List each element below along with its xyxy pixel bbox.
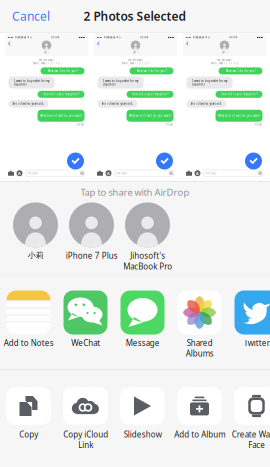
staticText: Message — [125, 337, 159, 348]
staticText: Shared Albums — [185, 337, 213, 359]
staticText: She is twelve years old. — [190, 102, 222, 105]
staticText: Lan › — [43, 50, 49, 54]
staticText: What can I do for you? — [225, 69, 255, 73]
staticText: Create Watch Face — [231, 429, 270, 450]
button[interactable]: WeChat — [57, 290, 114, 366]
staticText: A — [196, 171, 199, 176]
staticText: 10:04 — [228, 35, 237, 39]
staticText: Cancel — [12, 8, 50, 24]
button[interactable]: Selected photo — [5, 33, 88, 179]
staticText: I want to buy a skirt for my daughter — [14, 79, 49, 86]
staticText: Mon, Mar 11 11:13 — [33, 61, 60, 65]
staticText: A — [18, 171, 21, 176]
staticText: I want to buy a skirt for my daughter — [192, 79, 227, 86]
staticText: ▬▬ 中国移动 4G — [7, 35, 31, 39]
staticText: ▬▬ 中国移动 4G — [185, 35, 209, 39]
staticText: What kind of skirt do you want? — [218, 114, 260, 117]
staticText: Jihosoft's MacBook Pro — [123, 250, 172, 272]
button[interactable]: Jihosoft's MacBook Pro — [119, 202, 175, 274]
button[interactable]: Twitter — [228, 290, 270, 366]
staticText: 10:04 — [50, 35, 59, 39]
staticText: Text Message — [38, 58, 54, 61]
staticText: How old is your daughter? — [42, 93, 79, 96]
button[interactable]: iPhone 7 Plus — [63, 202, 119, 274]
staticText: 2 Photos Selected — [83, 8, 186, 24]
staticText: iMessage — [205, 171, 217, 175]
staticText: Tap to share with AirDrop — [80, 186, 189, 198]
staticText: She is twelve years old. — [12, 102, 44, 105]
staticText: Read — [255, 123, 262, 126]
staticText: Text Message — [127, 58, 143, 61]
button[interactable]: Shared Albums — [171, 290, 228, 366]
staticText: iMessage — [27, 171, 39, 175]
staticText: Read — [166, 123, 173, 126]
staticText: Copy iCloud Link — [63, 429, 108, 450]
button[interactable]: Copy iCloud Link — [57, 387, 114, 467]
button[interactable]: Add to Notes — [0, 290, 57, 366]
staticText: ▪▪▬ — [78, 36, 85, 39]
staticText: ▪▪▬ — [167, 36, 174, 39]
staticText: Add to Notes — [3, 337, 53, 348]
staticText: Copy — [19, 429, 38, 440]
button[interactable]: Cancel — [0, 0, 62, 32]
button[interactable]: Selected photo — [94, 33, 177, 179]
staticText: Lan › — [132, 50, 138, 54]
button[interactable]: Create Watch Face — [228, 387, 270, 467]
staticText: iMessage — [116, 171, 128, 175]
staticText: What kind of skirt do you want? — [129, 114, 171, 117]
button[interactable]: Add to Album — [171, 387, 228, 467]
button[interactable]: Message — [114, 290, 171, 366]
staticText: Lan › — [221, 50, 227, 54]
button[interactable]: Selected photo — [183, 33, 266, 179]
staticText: I want to buy a skirt for my daughter — [103, 79, 138, 86]
staticText: Read — [77, 123, 84, 126]
staticText: What can I do for you? — [136, 69, 166, 73]
staticText: Twitter — [243, 337, 269, 348]
staticText: How old is your daughter? — [131, 93, 168, 96]
staticText: Mon, Mar 11 11:13 — [122, 61, 149, 65]
staticText: She is twelve years old. — [101, 102, 133, 105]
button[interactable]: Copy — [0, 387, 57, 467]
staticText: Mon, Mar 11 11:13 — [211, 61, 238, 65]
staticText: Text Message — [216, 58, 232, 61]
staticText: What kind of skirt do you want? — [40, 114, 82, 117]
staticText: Slideshow — [123, 429, 161, 440]
staticText: 10:04 — [139, 35, 148, 39]
staticText: Add to Album — [174, 429, 225, 440]
staticText: ▪▪▬ — [256, 36, 263, 39]
staticText: What can I do for you? — [47, 69, 77, 73]
button[interactable]: Slideshow — [114, 387, 171, 467]
staticText: A — [107, 171, 110, 176]
staticText: How old is your daughter? — [220, 93, 257, 96]
staticText: 小莉 — [27, 250, 43, 260]
staticText: ▬▬ 中国移动 4G — [96, 35, 120, 39]
staticText: WeChat — [71, 337, 100, 348]
staticText: iPhone 7 Plus — [65, 250, 117, 261]
button[interactable]: 小莉 — [7, 202, 63, 274]
